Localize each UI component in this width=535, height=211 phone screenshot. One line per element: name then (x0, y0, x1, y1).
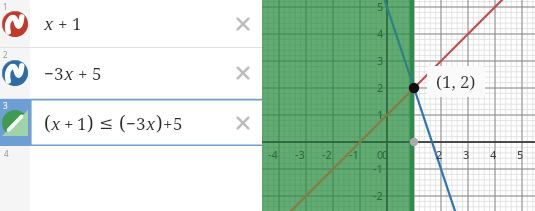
staticText: 0 (382, 147, 389, 162)
button[interactable]: (1, 2) (436, 70, 476, 93)
staticText: -2 (322, 147, 332, 162)
staticText: -2 (373, 188, 383, 203)
staticText: ≤ (99, 113, 114, 133)
staticText: 5 (92, 62, 102, 85)
staticText: ( (119, 110, 126, 136)
staticText: -1 (373, 161, 383, 176)
staticText: -1 (349, 147, 359, 162)
staticText: + (163, 112, 173, 135)
staticText: 3 (463, 147, 470, 162)
staticText: x (51, 112, 61, 135)
staticText: 1 (377, 107, 384, 122)
button[interactable]: 2 (0, 48, 262, 98)
staticText: − (44, 62, 54, 85)
staticText: 2 (436, 147, 443, 162)
button[interactable]: Delete expression 2 (232, 62, 254, 84)
staticText: 3 (54, 62, 64, 85)
staticText: x (146, 112, 156, 135)
staticText: ( (44, 110, 51, 136)
staticText: 1 (72, 12, 82, 35)
staticText: + (58, 12, 68, 35)
button[interactable]: 3 (0, 99, 262, 146)
staticText: 4 (377, 26, 384, 41)
button[interactable]: 1 (0, 0, 262, 47)
staticText: ) (156, 110, 163, 136)
staticText: 3 (3, 100, 8, 111)
staticText: 5 (377, 0, 384, 14)
button[interactable]: Delete expression 3 (232, 112, 254, 134)
button[interactable]: Delete expression 1 (232, 13, 254, 35)
staticText: 2 (3, 49, 8, 60)
staticText: (1, 2) (436, 70, 476, 93)
staticText: 3 (136, 112, 146, 135)
staticText: 5 (517, 147, 524, 162)
staticText: 3 (377, 53, 384, 68)
staticText: 1 (3, 1, 8, 12)
staticText: -4 (268, 147, 278, 162)
staticText: -3 (295, 147, 305, 162)
staticText: − (126, 112, 136, 135)
staticText: 4 (490, 147, 497, 162)
staticText: 4 (4, 148, 9, 159)
staticText: x (64, 62, 74, 85)
button[interactable]: 4 (0, 146, 262, 176)
staticText: x (44, 12, 54, 35)
staticText: ) (87, 110, 94, 136)
staticText: 2 (377, 80, 384, 95)
staticText: 5 (173, 112, 183, 135)
staticText: + (78, 62, 88, 85)
staticText: 1 (77, 112, 87, 135)
staticText: 0 (377, 147, 384, 162)
staticText: + (64, 112, 74, 135)
